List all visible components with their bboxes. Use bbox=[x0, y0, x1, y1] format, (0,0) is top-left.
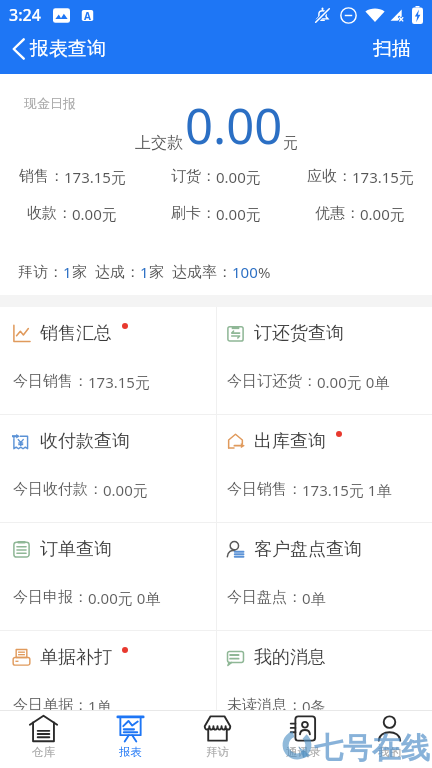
staticText: 0.00元 0单 bbox=[317, 372, 390, 392]
button[interactable]: 拜访 bbox=[174, 711, 260, 768]
button[interactable]: 报表 bbox=[87, 711, 174, 768]
staticText: A bbox=[84, 9, 91, 22]
staticText: 今日订还货： bbox=[227, 372, 317, 391]
staticText: 0条 bbox=[302, 696, 326, 716]
button[interactable]: 订单查询 bbox=[0, 523, 216, 630]
staticText: 报表查询 bbox=[30, 37, 106, 61]
staticText: 0.00元 0单 bbox=[88, 588, 161, 608]
button[interactable]: 我的 bbox=[346, 711, 432, 768]
staticText: 0.00元 bbox=[216, 204, 261, 224]
staticText: 我的消息 bbox=[254, 646, 326, 669]
staticText: 出库查询 bbox=[254, 430, 326, 453]
staticText: 家 bbox=[149, 263, 164, 282]
button[interactable]: 单据补打 bbox=[0, 631, 216, 738]
staticText: 应收： bbox=[307, 167, 352, 186]
staticText: 今日盘点： bbox=[227, 588, 302, 607]
staticText: 销售： bbox=[19, 167, 64, 186]
staticText: 未读消息： bbox=[227, 696, 302, 715]
button[interactable]: 收付款查询 bbox=[0, 415, 216, 522]
staticText: 达成： bbox=[95, 263, 140, 282]
staticText: 今日销售： bbox=[227, 480, 302, 499]
staticText: 优惠： bbox=[315, 204, 360, 223]
staticText: 0.00元 bbox=[103, 480, 148, 500]
staticText: 今日单据： bbox=[13, 696, 88, 715]
staticText: 客户盘点查询 bbox=[254, 538, 362, 561]
staticText: % bbox=[258, 262, 271, 282]
staticText: 今日申报： bbox=[13, 588, 88, 607]
button[interactable]: 出库查询 bbox=[216, 415, 432, 522]
button[interactable]: 销售汇总 bbox=[0, 307, 216, 414]
staticText: 1单 bbox=[88, 696, 112, 716]
staticText: 家 bbox=[72, 263, 87, 282]
staticText: 订单查询 bbox=[40, 538, 112, 561]
staticText: 收款： bbox=[27, 204, 72, 223]
staticText: 173.15元 bbox=[352, 167, 414, 187]
staticText: 0单 bbox=[302, 588, 326, 608]
staticText: 173.15元 bbox=[64, 167, 126, 187]
staticText: 上交款 bbox=[135, 133, 183, 153]
button[interactable]: 客户盘点查询 bbox=[216, 523, 432, 630]
staticText: 3:24 bbox=[9, 4, 41, 26]
staticText: 173.15元 1单 bbox=[302, 480, 392, 500]
button[interactable]: 通讯录 bbox=[260, 711, 346, 768]
button[interactable]: 扫描 bbox=[355, 29, 432, 69]
staticText: 1 bbox=[63, 262, 72, 282]
button[interactable]: Back bbox=[0, 33, 114, 65]
staticText: 单据补打 bbox=[40, 646, 112, 669]
staticText: 订还货查询 bbox=[254, 322, 344, 345]
other: Back bbox=[11, 38, 26, 60]
staticText: 扫描 bbox=[373, 37, 411, 61]
staticText: 0.00元 bbox=[216, 167, 261, 187]
staticText: 拜访 bbox=[206, 745, 229, 759]
staticText: 0.00 bbox=[185, 92, 283, 159]
staticText: 0.00元 bbox=[360, 204, 405, 224]
staticText: 我的 bbox=[378, 745, 401, 759]
staticText: 达成率： bbox=[172, 263, 232, 282]
staticText: 刷卡： bbox=[171, 204, 216, 223]
button[interactable]: 订还货查询 bbox=[216, 307, 432, 414]
staticText: 仓库 bbox=[32, 745, 55, 759]
staticText: 1 bbox=[140, 262, 149, 282]
staticText: 元 bbox=[283, 134, 298, 153]
button[interactable]: 我的消息 bbox=[216, 631, 432, 738]
staticText: 今日销售： bbox=[13, 372, 88, 391]
staticText: 通讯录 bbox=[286, 745, 321, 759]
staticText: 订货： bbox=[171, 167, 216, 186]
staticText: 今日收付款： bbox=[13, 480, 103, 499]
staticText: 100 bbox=[232, 262, 258, 282]
staticText: 173.15元 bbox=[88, 372, 150, 392]
button[interactable]: 仓库 bbox=[0, 711, 87, 768]
staticText: 拜访： bbox=[18, 263, 63, 282]
staticText: 报表 bbox=[119, 745, 142, 759]
staticText: 0.00元 bbox=[72, 204, 117, 224]
staticText: 销售汇总 bbox=[40, 322, 112, 345]
staticText: 现金日报 bbox=[24, 95, 76, 111]
staticText: 收付款查询 bbox=[40, 430, 130, 453]
staticText: 七号在线 bbox=[314, 730, 430, 767]
